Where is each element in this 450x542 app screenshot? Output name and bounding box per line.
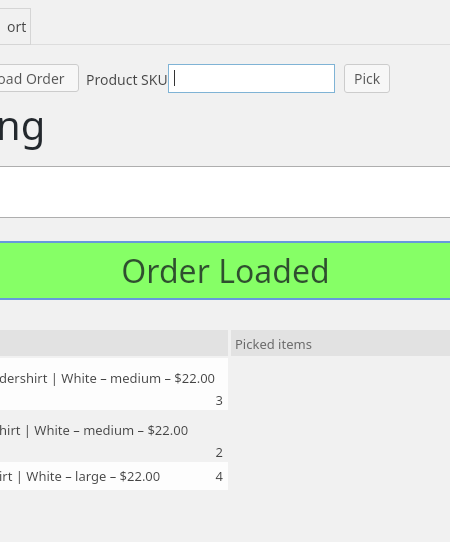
button[interactable]: Order Loaded [0, 243, 450, 298]
staticText: Product SKU: [86, 70, 172, 89]
staticText: ng [0, 97, 46, 151]
staticText: 4 [0, 467, 223, 485]
button[interactable]: irt | White – large – $22.00 [0, 462, 228, 490]
staticText: dershirt | White – medium – $22.00 [0, 369, 216, 387]
button[interactable]: hirt | White – medium – $22.00 [0, 410, 228, 462]
staticText: irt | White – large – $22.00 [0, 467, 161, 485]
staticText: Order Loaded [121, 249, 330, 293]
staticText: 3 [0, 391, 223, 409]
button[interactable]: Load Order [0, 64, 79, 92]
button[interactable]: Pick [344, 64, 390, 93]
staticText: Load Order [0, 69, 65, 88]
staticText: Picked items [235, 335, 312, 353]
button[interactable]: ort [0, 8, 31, 45]
staticText: hirt | White – medium – $22.00 [0, 421, 189, 439]
button[interactable]: dershirt | White – medium – $22.00 [0, 358, 228, 410]
staticText: ort [7, 17, 27, 36]
staticText: Pick [354, 69, 381, 88]
staticText: 2 [0, 443, 223, 461]
button[interactable]: Product SKU input [168, 64, 335, 93]
